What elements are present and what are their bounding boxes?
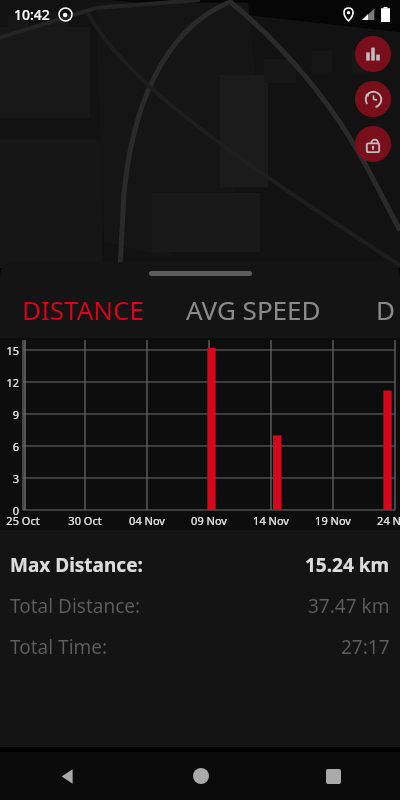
button[interactable]: History xyxy=(355,81,391,117)
button[interactable]: AVG SPEED xyxy=(186,280,376,338)
staticText: 30 Oct xyxy=(61,513,109,528)
button[interactable]: DISTANCE xyxy=(0,280,186,338)
button[interactable]: D xyxy=(376,280,395,338)
staticText: 19 Nov xyxy=(309,513,357,528)
staticText: 0 xyxy=(0,503,19,518)
staticText: D xyxy=(376,292,395,327)
staticText: 10:42 xyxy=(14,5,50,24)
staticText: 04 Nov xyxy=(123,513,171,528)
staticText: Total Distance: xyxy=(10,593,141,619)
button[interactable]: Max Distance: xyxy=(0,544,400,585)
staticText: 37.47 km xyxy=(308,593,390,619)
staticText: 12 xyxy=(0,375,19,390)
staticText: 15.24 km xyxy=(305,552,390,578)
staticText: 14 Nov xyxy=(247,513,295,528)
staticText: 24 Nov xyxy=(371,513,400,528)
staticText: 27:17 xyxy=(341,634,390,660)
button[interactable]: Total Distance: xyxy=(0,585,400,626)
button[interactable]: Total Time: xyxy=(0,626,400,667)
staticText: 9 xyxy=(0,407,19,422)
staticText: Max Distance: xyxy=(10,552,143,578)
staticText: Total Time: xyxy=(10,634,108,660)
staticText: DISTANCE xyxy=(22,292,144,327)
staticText: 6 xyxy=(0,439,19,454)
staticText: AVG SPEED xyxy=(186,292,321,327)
staticText: 09 Nov xyxy=(185,513,233,528)
staticText: 15 xyxy=(0,343,19,358)
staticText: 25 Oct xyxy=(0,513,47,528)
button[interactable]: Home xyxy=(134,752,267,800)
button[interactable]: Recent apps xyxy=(267,752,400,800)
button[interactable]: Unlock xyxy=(355,126,391,162)
button[interactable]: Back xyxy=(0,752,134,800)
button[interactable]: Statistics xyxy=(355,36,391,72)
staticText: 3 xyxy=(0,471,19,486)
